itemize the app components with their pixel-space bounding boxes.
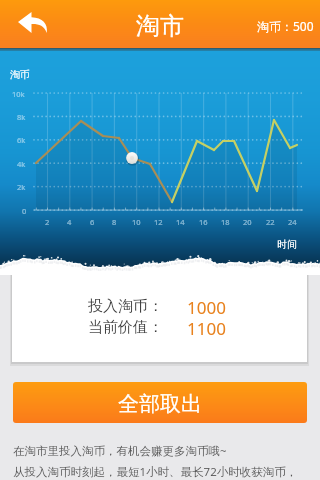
staticText: 6k: [17, 135, 26, 145]
staticText: 1100: [187, 317, 226, 340]
staticText: 当前价值：: [88, 318, 163, 337]
staticText: 在淘市里投入淘币，有机会赚更多淘币哦~: [13, 443, 227, 459]
staticText: 24: [288, 217, 297, 227]
staticText: 投入淘币：: [88, 297, 163, 316]
staticText: 22: [266, 217, 275, 227]
staticText: 8k: [17, 112, 26, 122]
staticText: 10: [132, 217, 141, 227]
staticText: 12: [154, 217, 163, 227]
staticText: 18: [221, 217, 230, 227]
staticText: 2k: [17, 182, 26, 192]
staticText: 4: [67, 217, 72, 227]
staticText: 6: [90, 217, 95, 227]
staticText: 8: [112, 217, 117, 227]
staticText: 14: [176, 217, 185, 227]
button[interactable]: 全部取出: [13, 382, 307, 423]
staticText: 时间: [277, 238, 297, 251]
staticText: 从投入淘币时刻起，最短1小时、最长72小时收获淘币，: [13, 464, 298, 480]
staticText: 20: [243, 217, 252, 227]
staticText: 10k: [12, 89, 25, 99]
staticText: 16: [199, 217, 208, 227]
staticText: 淘币：500: [257, 18, 314, 34]
staticText: 1000: [187, 296, 226, 319]
staticText: 淘市: [136, 11, 184, 41]
staticText: 0: [22, 206, 27, 216]
staticText: 4k: [17, 159, 26, 169]
staticText: 淘币: [10, 68, 30, 81]
staticText: 全部取出: [118, 391, 202, 417]
button[interactable]: Back: [10, 0, 56, 46]
staticText: 2: [45, 217, 50, 227]
